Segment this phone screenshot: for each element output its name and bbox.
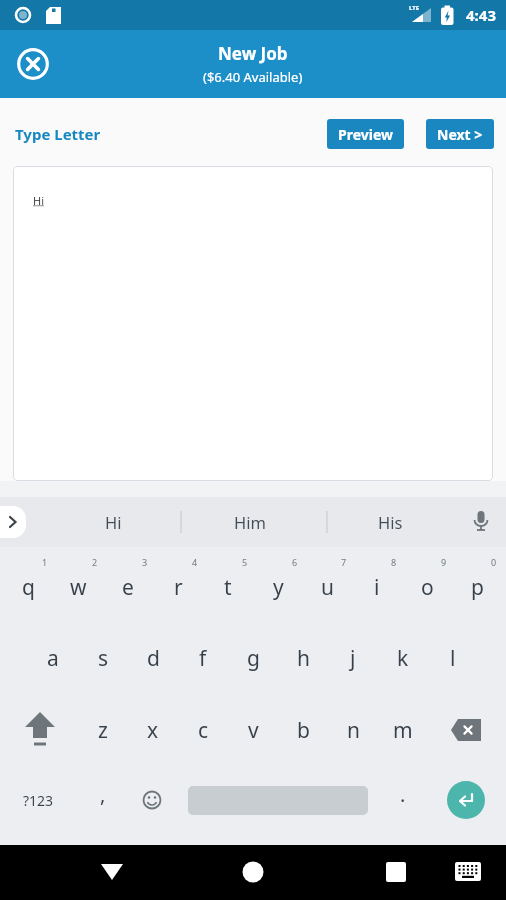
staticText: Preview xyxy=(338,125,393,144)
button[interactable] xyxy=(376,852,416,892)
button[interactable]: r xyxy=(153,551,203,623)
button[interactable]: Him xyxy=(195,497,305,547)
button[interactable]: His xyxy=(335,497,445,547)
button[interactable] xyxy=(92,852,132,892)
button[interactable]: Next > xyxy=(426,119,494,149)
button[interactable]: f xyxy=(178,622,228,694)
staticText: v xyxy=(248,716,259,745)
staticText: 1 xyxy=(42,556,48,568)
staticText: Next > xyxy=(437,125,483,144)
button[interactable]: k xyxy=(378,622,428,694)
button[interactable]: q xyxy=(3,551,53,623)
staticText: f xyxy=(199,644,207,673)
staticText: n xyxy=(347,716,360,745)
button[interactable]: d xyxy=(128,622,178,694)
staticText: , xyxy=(100,781,106,808)
button[interactable]: z xyxy=(78,694,128,766)
staticText: 4:43 xyxy=(466,5,496,25)
staticText: u xyxy=(321,573,334,602)
staticText: 9 xyxy=(441,556,447,568)
staticText: s xyxy=(98,644,109,673)
staticText: g xyxy=(247,644,260,673)
staticText: k xyxy=(397,644,409,673)
button[interactable] xyxy=(447,781,485,819)
staticText: r xyxy=(174,573,183,602)
staticText: d xyxy=(147,644,160,673)
staticText: t xyxy=(224,573,232,602)
staticText: y xyxy=(273,573,284,602)
staticText: w xyxy=(70,573,87,602)
button[interactable]: Hi xyxy=(58,497,168,547)
button[interactable]: x xyxy=(128,694,178,766)
button[interactable]: w xyxy=(53,551,103,623)
staticText: l xyxy=(450,644,456,673)
button[interactable]: m xyxy=(378,694,428,766)
staticText: a xyxy=(47,644,59,673)
staticText: ?123 xyxy=(23,791,54,810)
button[interactable]: h xyxy=(278,622,328,694)
button[interactable]: j xyxy=(328,622,378,694)
button[interactable]: a xyxy=(28,622,78,694)
button[interactable]: o xyxy=(402,551,452,623)
staticText: 3 xyxy=(142,556,148,568)
staticText: His xyxy=(378,511,403,533)
button[interactable] xyxy=(128,764,176,836)
staticText: 7 xyxy=(341,556,347,568)
button[interactable] xyxy=(448,852,488,892)
button[interactable]: . xyxy=(378,758,428,830)
staticText: e xyxy=(122,573,134,602)
button[interactable]: n xyxy=(328,694,378,766)
staticText: i xyxy=(374,573,380,602)
staticText: m xyxy=(393,716,413,745)
staticText: 2 xyxy=(92,556,98,568)
button[interactable]: s xyxy=(78,622,128,694)
staticText: Hi xyxy=(105,511,122,533)
button[interactable]: ?123 xyxy=(6,764,70,836)
button[interactable]: g xyxy=(228,622,278,694)
button[interactable]: Preview xyxy=(327,119,404,149)
staticText: 4 xyxy=(192,556,198,568)
button[interactable] xyxy=(14,694,66,766)
button[interactable]: y xyxy=(253,551,303,623)
button[interactable]: v xyxy=(228,694,278,766)
staticText: 5 xyxy=(242,556,248,568)
button[interactable] xyxy=(0,506,26,538)
staticText: z xyxy=(98,716,108,745)
button[interactable] xyxy=(14,45,52,83)
staticText: Hi xyxy=(33,193,44,208)
staticText: 0 xyxy=(491,556,497,568)
staticText: 8 xyxy=(391,556,397,568)
button[interactable]: u xyxy=(302,551,352,623)
staticText: x xyxy=(147,716,159,745)
button[interactable]: Hi xyxy=(13,166,493,481)
staticText: Him xyxy=(234,511,266,533)
staticText: q xyxy=(22,573,35,602)
button[interactable]: c xyxy=(178,694,228,766)
staticText: h xyxy=(297,644,310,673)
staticText: b xyxy=(297,716,310,745)
staticText: p xyxy=(471,573,484,602)
button[interactable] xyxy=(440,694,492,766)
button[interactable]: l xyxy=(428,622,478,694)
staticText: LTE xyxy=(409,4,420,12)
staticText: 6 xyxy=(292,556,298,568)
staticText: o xyxy=(421,573,434,602)
button[interactable] xyxy=(233,852,273,892)
button[interactable]: i xyxy=(352,551,402,623)
button[interactable]: b xyxy=(278,694,328,766)
staticText: New Job xyxy=(218,42,288,65)
staticText: . xyxy=(400,781,406,808)
button[interactable]: , xyxy=(78,758,128,830)
button[interactable]: t xyxy=(203,551,253,623)
button[interactable]: p xyxy=(452,551,502,623)
staticText: j xyxy=(350,644,356,673)
staticText: ($6.40 Available) xyxy=(203,68,303,86)
staticText: c xyxy=(198,716,209,745)
staticText: Type Letter xyxy=(15,124,101,144)
button[interactable]: e xyxy=(103,551,153,623)
